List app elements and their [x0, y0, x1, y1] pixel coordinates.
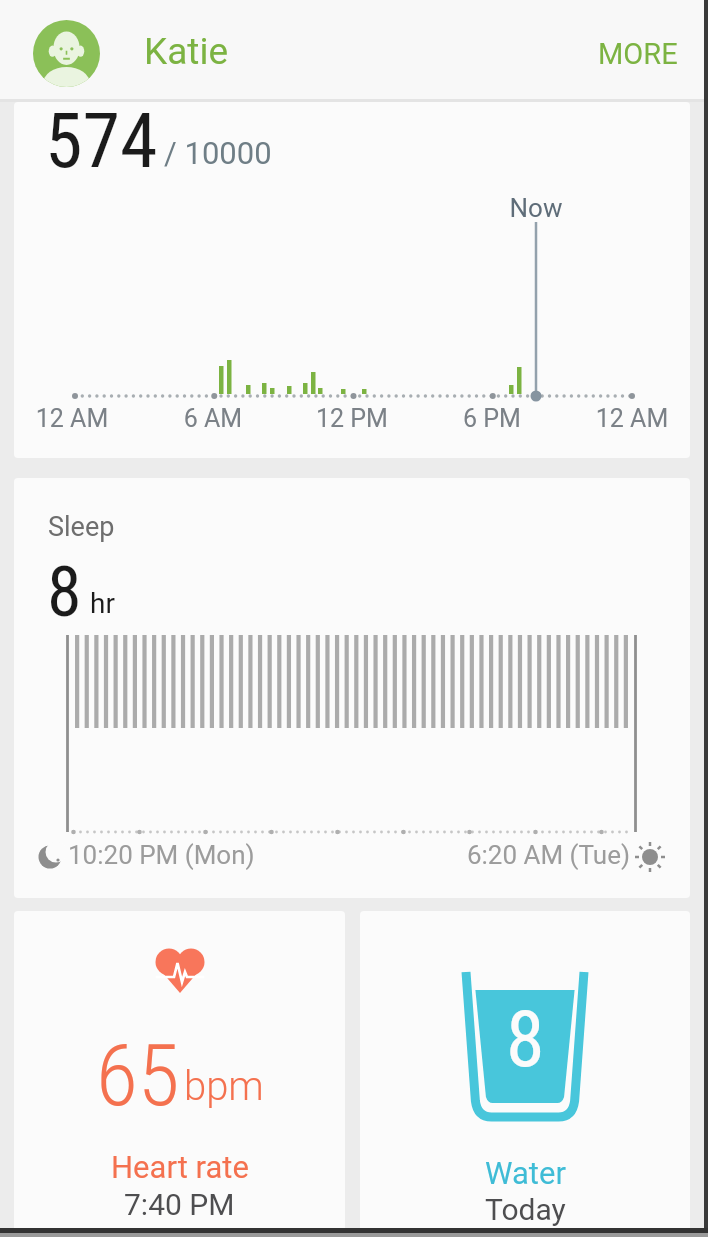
button[interactable]: MORE	[590, 29, 686, 79]
staticText: 574	[45, 102, 158, 185]
staticText: Katie	[144, 30, 229, 73]
staticText: Water	[485, 1155, 566, 1191]
staticText: MORE	[598, 37, 678, 71]
staticText: 65	[96, 1025, 180, 1126]
staticText: 6 PM	[432, 404, 552, 433]
staticText: 10:20 PM (Mon)	[68, 840, 255, 870]
staticText: 8	[47, 551, 82, 633]
staticText: 12 AM	[14, 404, 132, 433]
staticText: 7:40 PM	[124, 1187, 235, 1222]
button[interactable]: Sleep	[14, 478, 690, 898]
staticText: Sleep	[48, 511, 115, 543]
button[interactable]: Katie	[0, 0, 708, 99]
staticText: Now	[486, 193, 586, 223]
button[interactable]	[33, 20, 100, 87]
staticText: 8	[506, 994, 545, 1085]
staticText: bpm	[184, 1063, 264, 1110]
button[interactable]: 574	[14, 102, 690, 458]
button[interactable]: 65	[14, 911, 345, 1237]
staticText: 12 AM	[572, 404, 690, 433]
staticText: / 10000	[164, 135, 272, 171]
staticText: Heart rate	[111, 1149, 249, 1185]
staticText: 12 PM	[292, 404, 412, 433]
staticText: 6:20 AM (Tue)	[330, 840, 630, 870]
button[interactable]: 8	[360, 911, 690, 1237]
staticText: hr	[90, 587, 115, 620]
staticText: Today	[485, 1192, 566, 1227]
staticText: 6 AM	[153, 404, 273, 433]
